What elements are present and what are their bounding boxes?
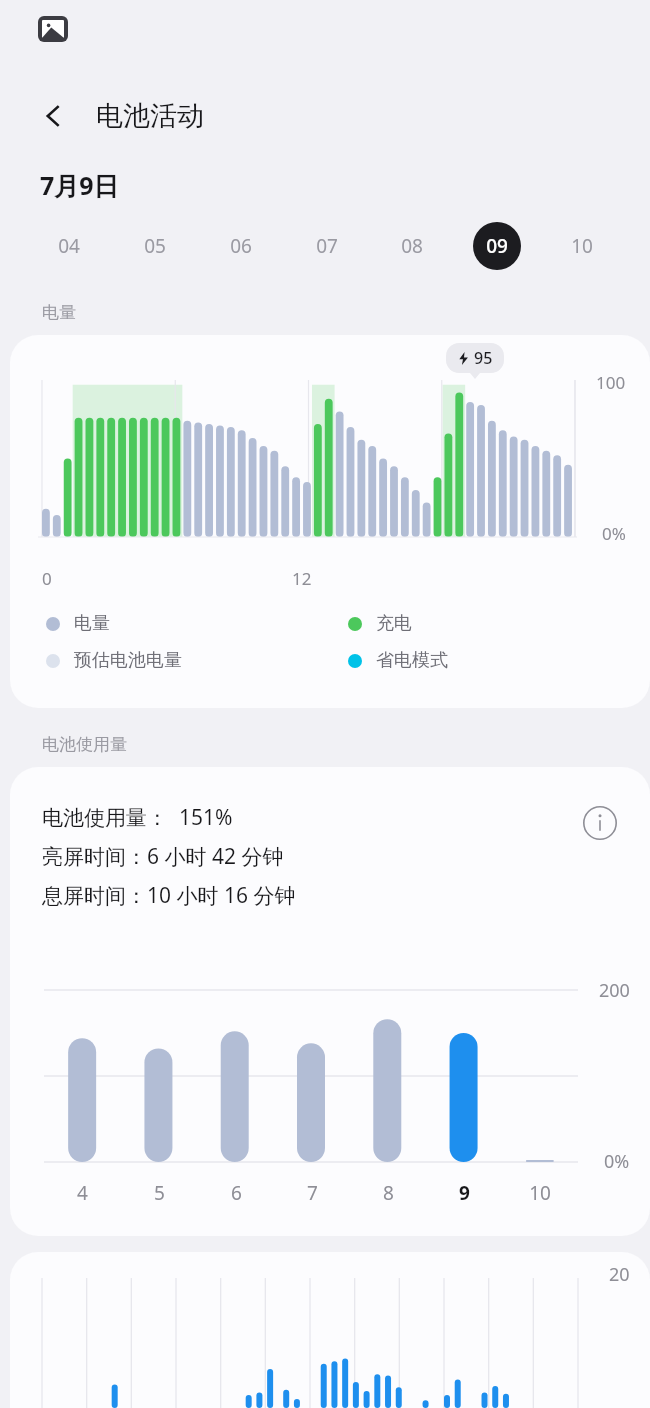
staticText: 06 (230, 233, 252, 259)
staticText: 6 (231, 1180, 242, 1206)
staticText: 4 (77, 1180, 88, 1206)
staticText: 05 (144, 233, 166, 259)
staticText: 07 (316, 233, 338, 259)
button[interactable]: Back (30, 92, 78, 140)
staticText: 息屏时间：10 小时 16 分钟 (42, 881, 296, 910)
button[interactable]: 06 (198, 220, 284, 272)
staticText: 电量 (42, 302, 76, 323)
staticText: 电量 (74, 612, 110, 635)
button[interactable]: Info (580, 803, 620, 843)
staticText: 04 (58, 233, 80, 259)
staticText: 0% (604, 1149, 630, 1174)
button[interactable]: 05 (112, 220, 198, 272)
staticText: 200 (599, 978, 630, 1003)
staticText: 95 (474, 347, 493, 369)
staticText: 20 (609, 1262, 630, 1287)
staticText: 10 (571, 233, 593, 259)
button[interactable]: 07 (284, 220, 369, 272)
button[interactable]: Image (38, 14, 68, 44)
staticText: 省电模式 (376, 649, 448, 672)
staticText: 12 (292, 567, 312, 590)
staticText: 9 (459, 1180, 470, 1206)
staticText: 电池活动 (96, 99, 204, 133)
staticText: 7月9日 (40, 168, 119, 202)
staticText: 10 (529, 1180, 551, 1206)
staticText: 0% (602, 522, 626, 545)
button[interactable]: 100 (10, 335, 650, 708)
staticText: 09 (486, 233, 508, 259)
staticText: 预估电池电量 (74, 649, 182, 672)
button[interactable]: 08 (369, 220, 454, 272)
staticText: 08 (401, 233, 423, 259)
button[interactable]: 20 (10, 1252, 650, 1408)
button[interactable]: 09 (454, 220, 539, 272)
staticText: 5 (154, 1180, 165, 1206)
staticText: 充电 (376, 612, 412, 635)
staticText: 电池使用量 (42, 734, 127, 755)
staticText: 7 (307, 1180, 318, 1206)
staticText: 电池使用量： 151% (42, 803, 233, 832)
staticText: 100 (596, 371, 626, 394)
staticText: 0 (42, 567, 52, 590)
button[interactable]: 10 (539, 220, 624, 272)
button[interactable]: 电池使用量： 151% (10, 767, 650, 1236)
button[interactable]: 04 (26, 220, 112, 272)
staticText: 8 (383, 1180, 394, 1206)
staticText: 亮屏时间：6 小时 42 分钟 (42, 842, 284, 871)
